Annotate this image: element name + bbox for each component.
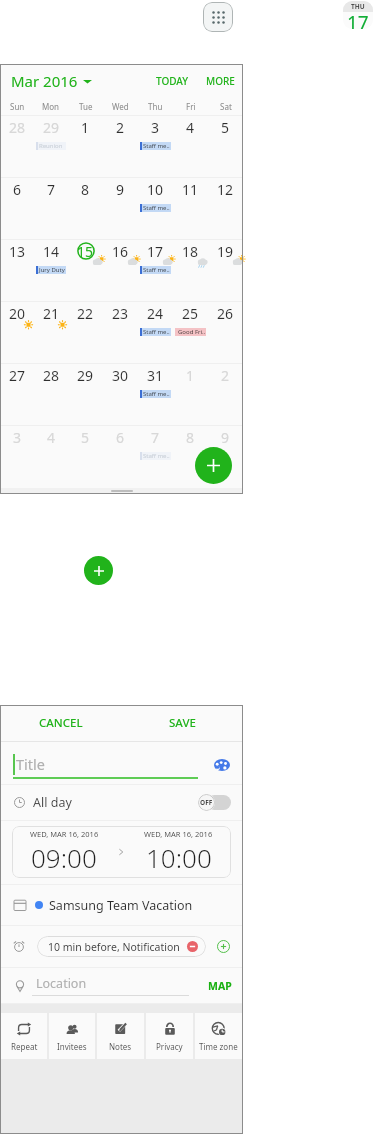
button[interactable]: Mar 2016: [11, 67, 92, 95]
button[interactable]: 6: [0, 177, 34, 239]
button[interactable]: 11: [173, 177, 208, 239]
button[interactable]: 16: [103, 239, 138, 301]
button[interactable]: Add event: [84, 556, 113, 585]
button[interactable]: 1: [68, 115, 103, 177]
staticText: SAVE: [169, 715, 196, 731]
button[interactable]: All day toggle: [198, 794, 231, 811]
staticText: 09:00: [31, 840, 97, 875]
staticText: 10 min before, Notification: [48, 940, 180, 954]
staticText: 1: [186, 366, 195, 384]
staticText: 5: [221, 118, 230, 136]
button[interactable]: 15: [68, 239, 103, 301]
button[interactable]: 9: [208, 425, 243, 487]
staticText: Notes: [109, 1041, 132, 1052]
button[interactable]: 29: [34, 115, 68, 177]
staticText: 11: [182, 180, 199, 198]
staticText: 10: [147, 180, 164, 198]
button[interactable]: 8: [173, 425, 208, 487]
button[interactable]: TODAY: [152, 67, 193, 95]
button[interactable]: Title: [0, 742, 243, 784]
button[interactable]: 25: [173, 301, 208, 363]
button[interactable]: 27: [0, 363, 34, 425]
button[interactable]: 4: [173, 115, 208, 177]
button[interactable]: Add event: [195, 447, 232, 484]
staticText: 25: [182, 304, 199, 322]
button[interactable]: 18: [173, 239, 208, 301]
staticText: 26: [217, 304, 234, 322]
staticText: 7: [151, 428, 160, 446]
button[interactable]: 28: [0, 115, 34, 177]
button[interactable]: Remove notification: [187, 941, 198, 952]
button[interactable]: 2: [208, 363, 243, 425]
button[interactable]: 30: [103, 363, 138, 425]
button[interactable]: 5: [68, 425, 103, 487]
staticText: 19: [217, 242, 234, 260]
button[interactable]: 29: [68, 363, 103, 425]
button[interactable]: 17: [138, 239, 173, 301]
button[interactable]: Add notification: [217, 940, 230, 953]
button[interactable]: MAP: [206, 977, 234, 995]
button[interactable]: MORE: [202, 67, 239, 95]
button[interactable]: 13: [0, 239, 34, 301]
button[interactable]: Calendar: [343, 1, 373, 29]
staticText: Tue: [79, 101, 93, 112]
staticText: 10:00: [146, 840, 212, 875]
button[interactable]: 9: [103, 177, 138, 239]
button[interactable]: Notes: [97, 1013, 144, 1059]
button[interactable]: 31: [138, 363, 173, 425]
button[interactable]: 2: [103, 115, 138, 177]
button[interactable]: 23: [103, 301, 138, 363]
staticText: Mar 2016: [11, 71, 78, 91]
button[interactable]: 4: [34, 425, 68, 487]
button[interactable]: Apps: [203, 2, 233, 32]
button[interactable]: Privacy: [146, 1013, 193, 1059]
button[interactable]: 26: [208, 301, 243, 363]
button[interactable]: 6: [103, 425, 138, 487]
staticText: Title: [16, 754, 45, 774]
staticText: Staff me..: [143, 390, 170, 398]
button[interactable]: 7: [138, 425, 173, 487]
button[interactable]: 22: [68, 301, 103, 363]
button[interactable]: Invitees: [49, 1013, 95, 1059]
staticText: 9: [221, 428, 230, 446]
staticText: OFF: [200, 798, 213, 807]
button[interactable]: 28: [34, 363, 68, 425]
staticText: Privacy: [156, 1041, 183, 1052]
button[interactable]: 10 min before, Notification: [37, 936, 206, 957]
staticText: 20: [9, 304, 26, 322]
button[interactable]: 10: [138, 177, 173, 239]
staticText: 17: [147, 242, 164, 260]
button[interactable]: Location: [0, 968, 243, 1003]
staticText: WED, MAR 16, 2016: [144, 829, 213, 839]
button[interactable]: 21: [34, 301, 68, 363]
staticText: 22: [77, 304, 94, 322]
staticText: Staff me..: [143, 204, 170, 212]
button[interactable]: Time zone: [195, 1013, 242, 1059]
button[interactable]: 8: [68, 177, 103, 239]
button[interactable]: CANCEL: [0, 705, 121, 741]
button[interactable]: 1: [173, 363, 208, 425]
button[interactable]: 5: [208, 115, 243, 177]
button[interactable]: 14: [34, 239, 68, 301]
staticText: Reunion: [39, 142, 63, 150]
button[interactable]: WED, MAR 16, 2016: [126, 826, 231, 878]
staticText: Time zone: [199, 1041, 238, 1052]
button[interactable]: 3: [138, 115, 173, 177]
button[interactable]: 24: [138, 301, 173, 363]
button[interactable]: Repeat: [1, 1013, 47, 1059]
button[interactable]: WED, MAR 16, 2016: [12, 826, 116, 878]
button[interactable]: 7: [34, 177, 68, 239]
staticText: 8: [186, 428, 195, 446]
button[interactable]: Samsung Team Vacation: [0, 885, 243, 925]
button[interactable]: 12: [208, 177, 243, 239]
button[interactable]: 19: [208, 239, 243, 301]
staticText: Samsung Team Vacation: [49, 897, 193, 914]
button[interactable]: 20: [0, 301, 34, 363]
staticText: Jury Duty: [39, 266, 65, 274]
button[interactable]: All day: [0, 785, 243, 820]
button[interactable]: Colour: [214, 759, 230, 771]
staticText: 3: [13, 428, 22, 446]
staticText: 30: [112, 366, 129, 384]
button[interactable]: SAVE: [121, 705, 243, 741]
button[interactable]: 3: [0, 425, 34, 487]
